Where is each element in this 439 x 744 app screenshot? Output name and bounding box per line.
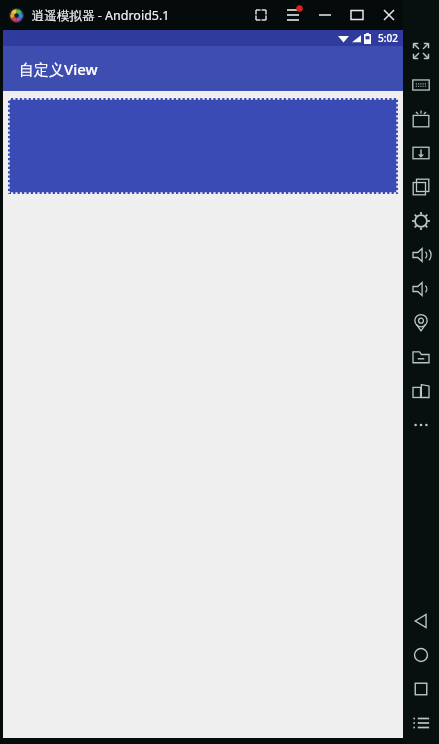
button[interactable]: Menu: [403, 706, 439, 740]
button[interactable]: More: [403, 408, 439, 442]
button[interactable]: Custom view canvas: [8, 98, 398, 194]
button[interactable]: Volume up: [403, 238, 439, 272]
button[interactable]: Resize: [245, 0, 277, 30]
staticText: 5:02: [378, 31, 398, 45]
button[interactable]: Menu: [277, 0, 309, 30]
staticText: 逍遥模拟器 - Android5.1: [32, 7, 170, 24]
staticText: 自定义View: [19, 59, 98, 79]
button[interactable]: Settings: [403, 204, 439, 238]
button[interactable]: Maximize: [341, 0, 373, 30]
button[interactable]: Keyboard: [403, 68, 439, 102]
button[interactable]: Multi window: [403, 170, 439, 204]
button[interactable]: Fullscreen: [403, 34, 439, 68]
button[interactable]: Recents: [403, 672, 439, 706]
button[interactable]: Install APK: [403, 102, 439, 136]
button[interactable]: File manager: [403, 340, 439, 374]
button[interactable]: Shared folder: [403, 136, 439, 170]
button[interactable]: Back: [403, 604, 439, 638]
button[interactable]: Multi instance: [403, 374, 439, 408]
button[interactable]: Volume down: [403, 272, 439, 306]
button[interactable]: Minimize: [309, 0, 341, 30]
button[interactable]: Close: [373, 0, 405, 30]
button[interactable]: Location: [403, 306, 439, 340]
button[interactable]: Home: [403, 638, 439, 672]
